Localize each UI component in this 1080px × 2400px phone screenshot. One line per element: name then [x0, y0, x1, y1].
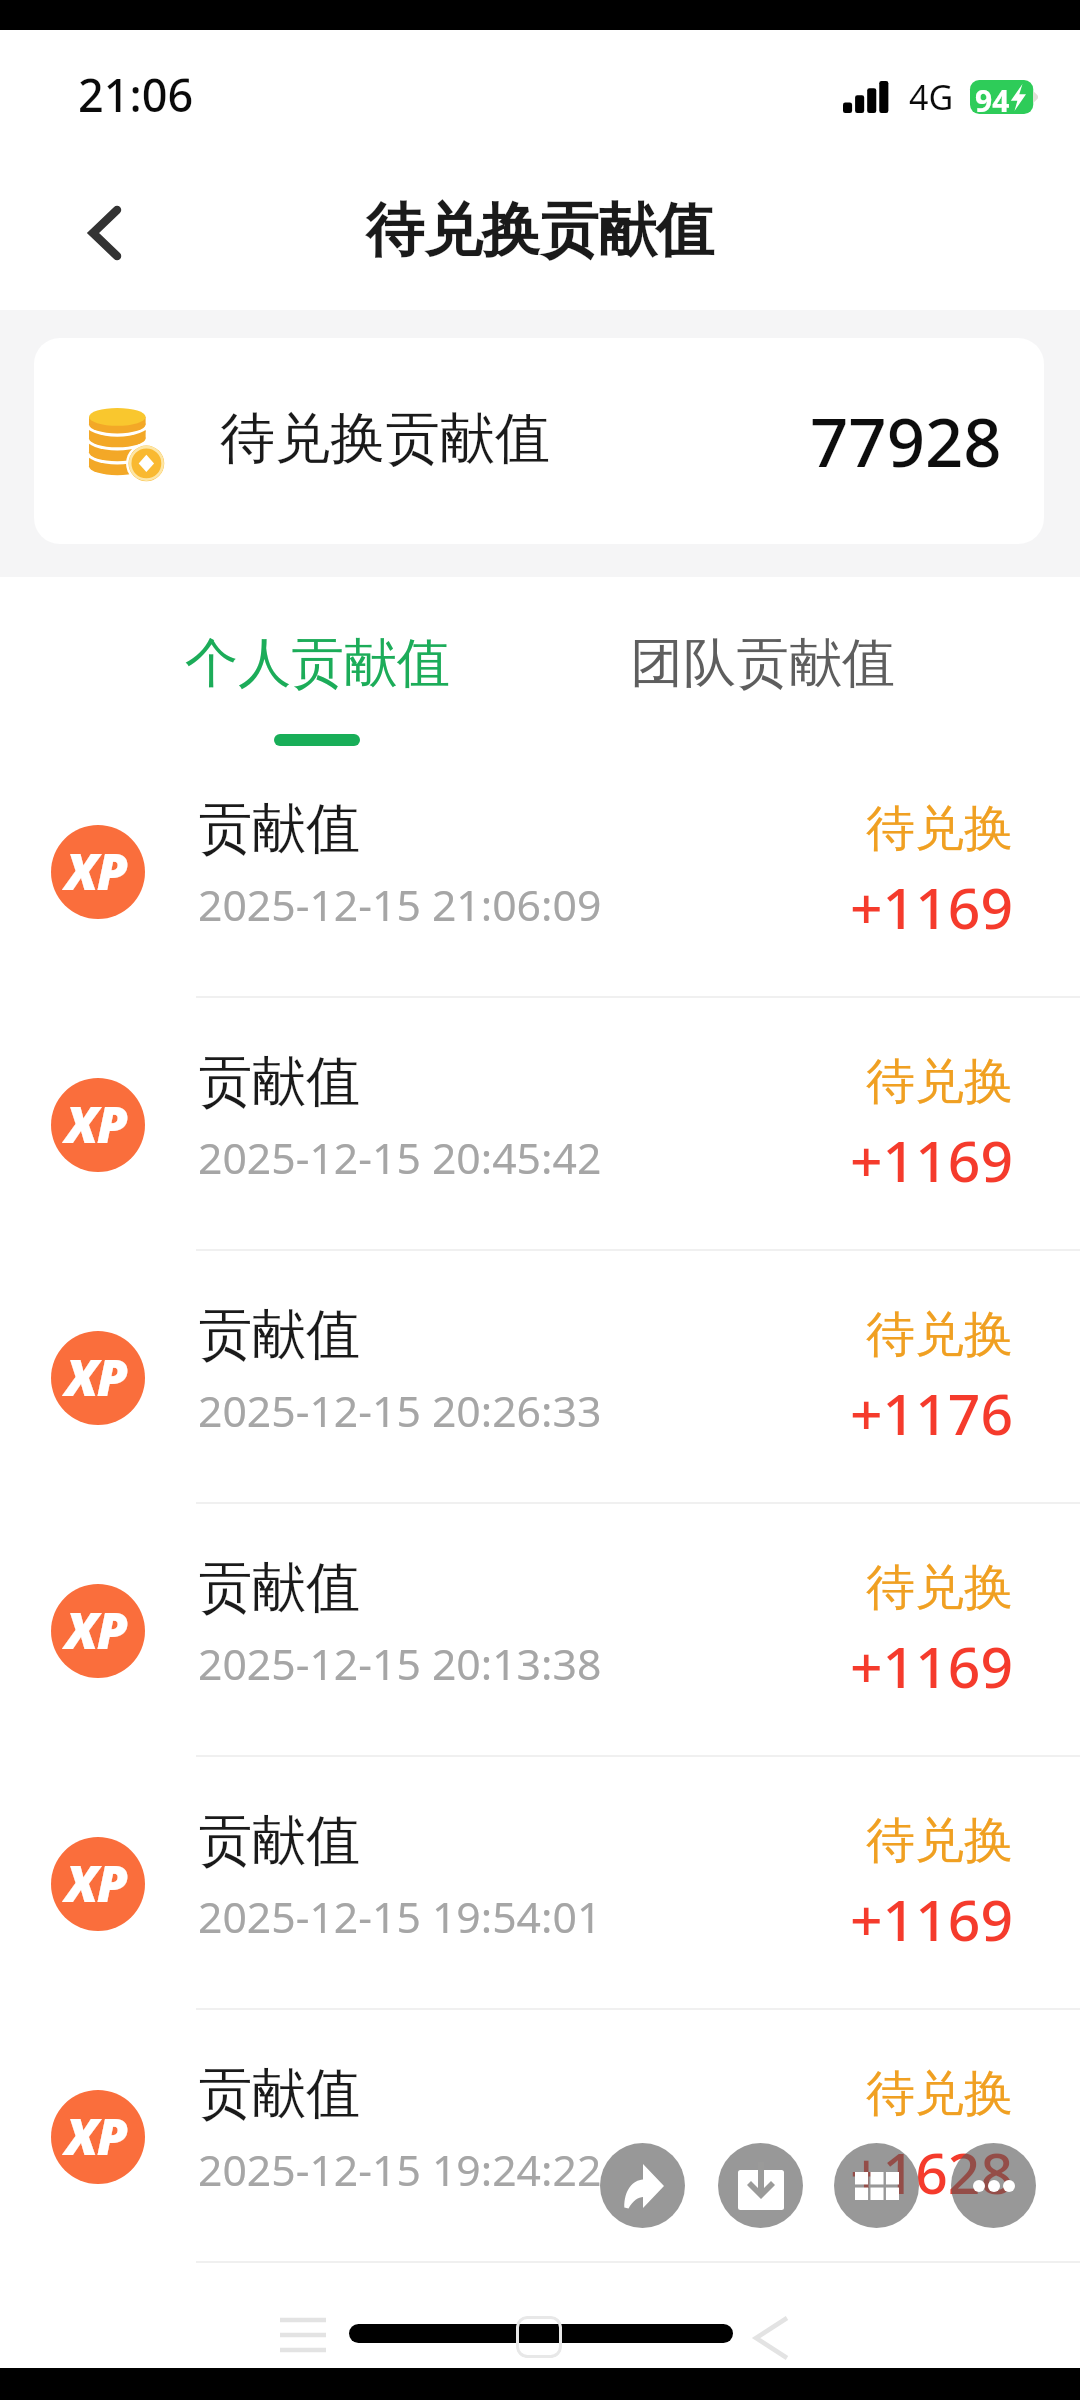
button[interactable]: More [951, 2143, 1036, 2228]
button[interactable]: XP [0, 1250, 1080, 1503]
button[interactable]: 待兑换贡献值 [34, 338, 1044, 544]
staticText: 2025-12-15 19:24:22 [198, 2140, 602, 2198]
staticText: +1169 [850, 1121, 1014, 1199]
staticText: 待兑换 [866, 1304, 1013, 1366]
staticText: 94 [975, 80, 1010, 114]
button[interactable]: Apps [834, 2143, 919, 2228]
button[interactable]: XP [0, 1503, 1080, 1756]
staticText: 2025-12-15 20:26:33 [198, 1381, 602, 1439]
staticText: XP [65, 1849, 127, 1917]
staticText: XP [65, 1343, 127, 1411]
staticText: 待兑换 [866, 1810, 1013, 1872]
button[interactable]: 个人贡献值 [170, 577, 465, 744]
button[interactable]: Home [349, 2324, 733, 2343]
staticText: 21:06 [78, 64, 194, 125]
button[interactable]: Recents [280, 2320, 326, 2350]
button[interactable]: Share [600, 2143, 685, 2228]
staticText: +1176 [850, 1374, 1014, 1452]
staticText: 4G [909, 74, 954, 120]
staticText: 2025-12-15 20:45:42 [198, 1128, 602, 1186]
button[interactable]: XP [0, 2009, 1080, 2262]
button[interactable]: XP [0, 744, 1080, 997]
staticText: XP [65, 837, 127, 905]
staticText: 2025-12-15 20:13:38 [198, 1634, 602, 1692]
staticText: 贡献值 [198, 1048, 360, 1116]
staticText: 待兑换贡献值 [366, 194, 714, 267]
staticText: 贡献值 [198, 1807, 360, 1875]
button[interactable]: XP [0, 1756, 1080, 2009]
staticText: 待兑换 [866, 1051, 1013, 1113]
staticText: 贡献值 [198, 1554, 360, 1622]
button[interactable]: Download [718, 2143, 803, 2228]
staticText: 待兑换 [866, 2063, 1013, 2125]
staticText: 2025-12-15 19:54:01 [198, 1887, 602, 1945]
staticText: 2025-12-15 21:06:09 [198, 875, 602, 933]
staticText: +1169 [850, 868, 1014, 946]
staticText: 个人贡献值 [185, 630, 450, 697]
staticText: 待兑换 [866, 1557, 1013, 1619]
staticText: 贡献值 [198, 795, 360, 863]
staticText: XP [65, 2102, 127, 2170]
button[interactable]: Back [756, 2318, 787, 2358]
staticText: 77928 [810, 395, 1002, 486]
staticText: 待兑换贡献值 [220, 404, 550, 473]
staticText: +1169 [850, 1627, 1014, 1705]
staticText: XP [65, 1090, 127, 1158]
button[interactable]: 团队贡献值 [615, 577, 910, 744]
staticText: 团队贡献值 [630, 630, 895, 697]
staticText: +1169 [850, 1880, 1014, 1958]
button[interactable]: XP [0, 997, 1080, 1250]
staticText: +1628 [850, 2133, 1014, 2211]
button[interactable]: Back [60, 188, 150, 278]
staticText: 贡献值 [198, 1301, 360, 1369]
staticText: 贡献值 [198, 2060, 360, 2128]
staticText: 待兑换 [866, 798, 1013, 860]
staticText: XP [65, 1596, 127, 1664]
